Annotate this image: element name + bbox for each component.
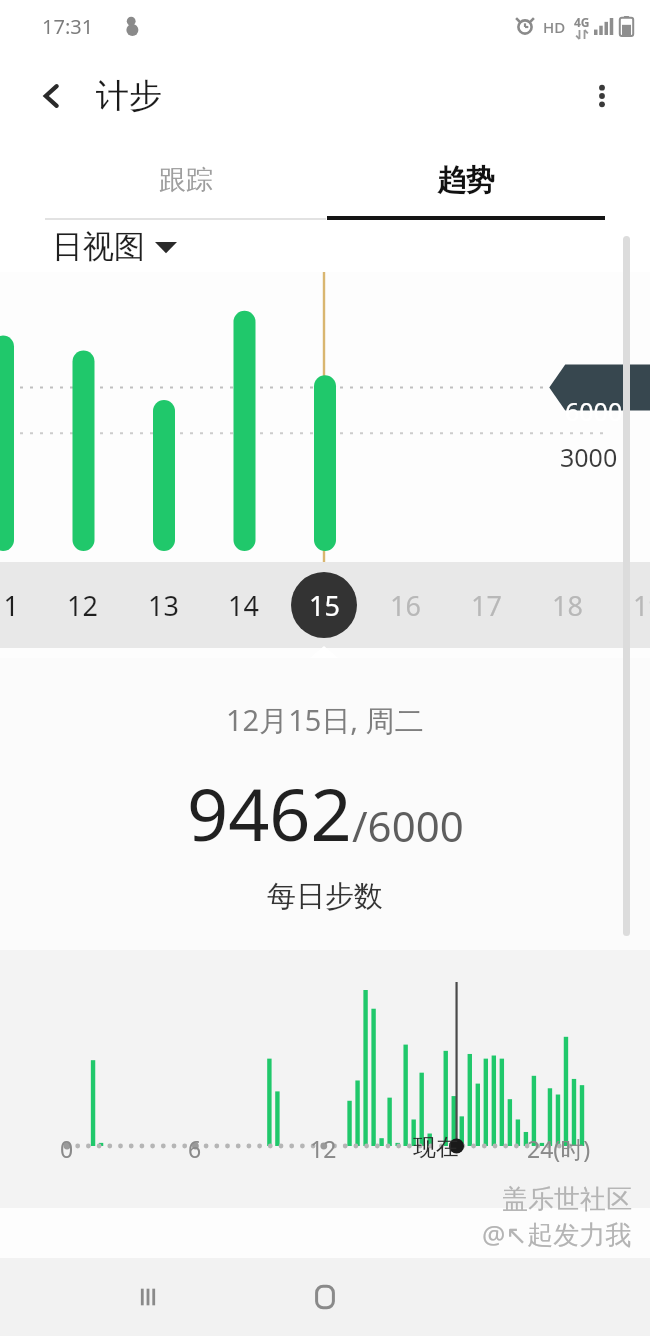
staticText: 趋势 [437,162,495,199]
staticText: 17 [471,587,502,624]
staticText: 12月15日, 周二 [226,700,424,740]
button[interactable]: 14 [207,569,279,641]
button[interactable]: Recents [112,1261,184,1333]
button[interactable]: 跟踪 [45,140,326,220]
staticText: 15 [309,587,340,624]
staticText: 4G [574,14,590,30]
staticText: 11 [0,587,19,624]
button[interactable]: 日视图 [52,227,177,266]
staticText: 0 [60,1133,74,1164]
staticText: 18 [552,587,583,624]
button[interactable]: 18 [531,569,603,641]
button[interactable]: 16 [369,569,441,641]
staticText: 跟踪 [159,163,213,197]
staticText: @↖起发力我 [482,1216,632,1252]
button[interactable]: 趋势 [327,140,605,220]
staticText: 6000 [565,394,623,428]
staticText: 12 [310,1133,337,1164]
staticText: 9462 [187,764,352,862]
staticText: 盖乐世社区 [502,1183,632,1216]
button[interactable]: 11 [0,569,39,641]
staticText: HD [543,17,566,37]
button[interactable]: 17 [450,569,522,641]
staticText: 计步 [96,75,162,117]
staticText: 现在 [413,1133,459,1162]
button[interactable]: 15 [288,569,360,641]
staticText: 24(时) [527,1133,591,1164]
staticText: 3000 [560,440,618,474]
button[interactable]: More options [576,70,628,122]
staticText: 17:31 [42,13,94,40]
staticText: /6000 [352,797,464,854]
staticText: 14 [228,587,259,624]
staticText: 每日步数 [267,878,383,915]
button[interactable]: 12 [46,569,118,641]
staticText: 19 [633,587,650,624]
staticText: 13 [148,587,179,624]
staticText: 12 [67,587,98,624]
staticText: 6 [188,1133,202,1164]
button[interactable]: 19 [612,569,650,641]
button[interactable]: 13 [127,569,199,641]
staticText: 日视图 [52,227,145,266]
staticText: 16 [390,587,421,624]
button[interactable]: Back [26,70,78,122]
button[interactable]: Home [289,1261,361,1333]
